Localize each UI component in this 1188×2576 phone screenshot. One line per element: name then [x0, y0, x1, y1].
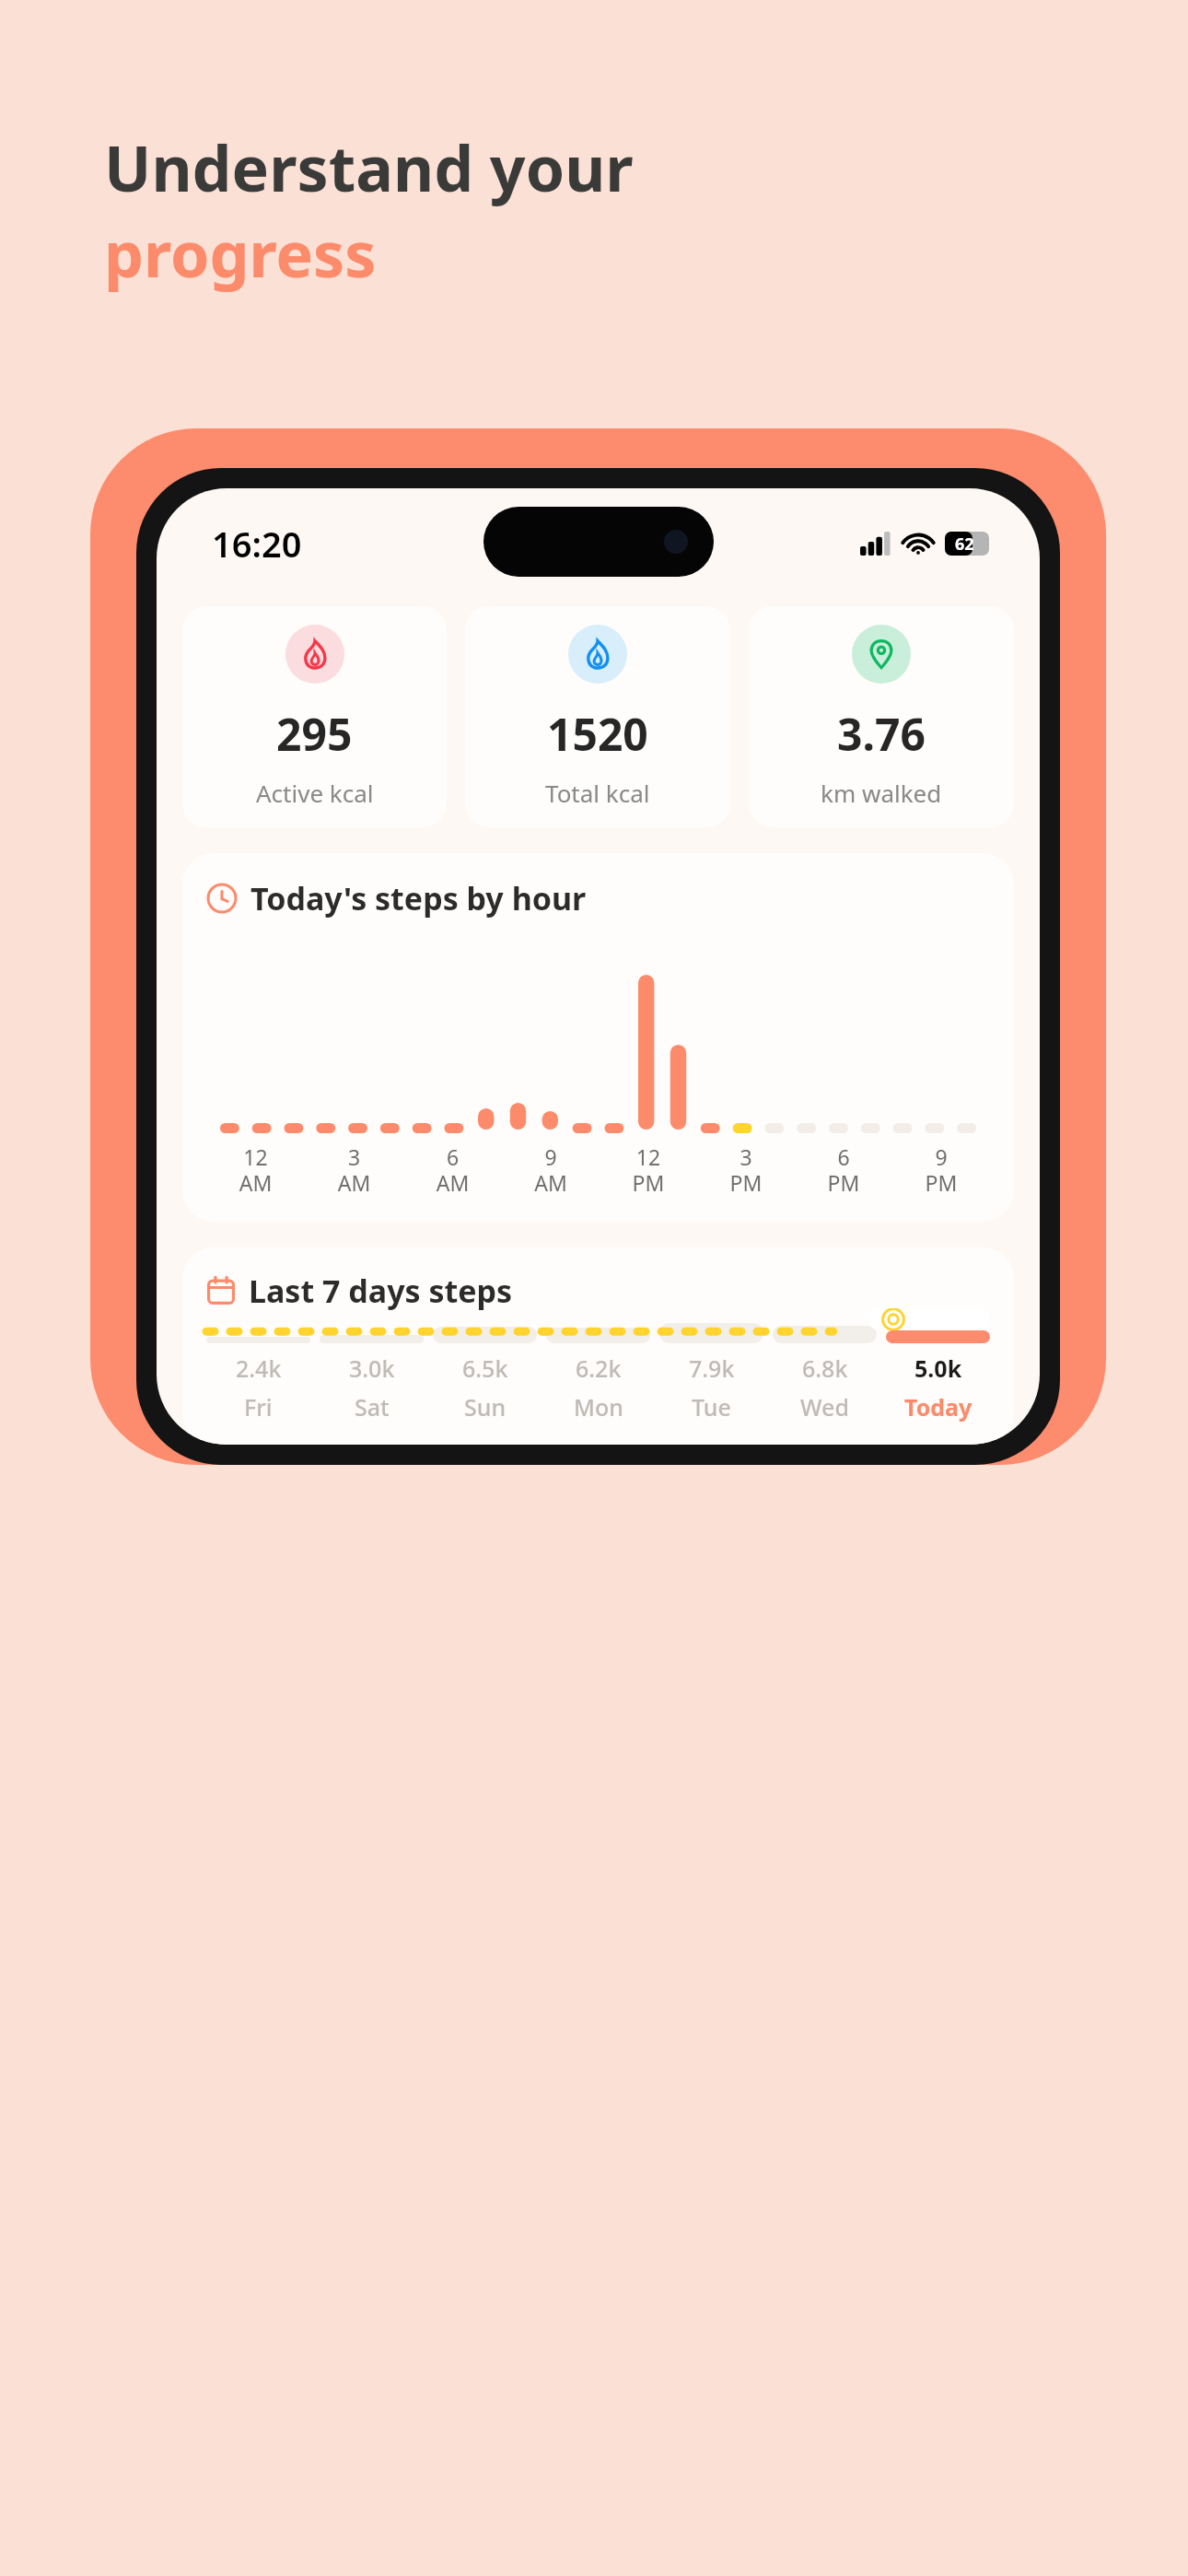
staticText: 3 PM [697, 1142, 795, 1198]
staticText: 5.0k [914, 1352, 962, 1384]
button[interactable]: Last 7 days steps [182, 1247, 1014, 1445]
button[interactable]: 3.76 [749, 606, 1014, 827]
staticText: Last 7 days steps [249, 1270, 513, 1312]
staticText: 12 AM [206, 1142, 305, 1198]
button[interactable]: 5.000 [868, 1308, 990, 1330]
staticText: 6 PM [795, 1142, 892, 1198]
staticText: 1520 [547, 704, 648, 764]
staticText: Today's steps by hour [250, 877, 587, 919]
staticText: Active kcal [256, 777, 374, 809]
staticText: 3 AM [305, 1142, 403, 1198]
staticText: Fri [244, 1391, 273, 1423]
staticText: 2.4k [236, 1352, 282, 1384]
button[interactable]: 295 [182, 606, 447, 827]
staticText: progress [104, 210, 377, 296]
staticText: 9 PM [892, 1142, 990, 1198]
staticText: Wed [800, 1391, 849, 1423]
staticText: 12 PM [600, 1142, 697, 1198]
staticText: km walked [821, 777, 942, 809]
staticText: 6 AM [403, 1142, 502, 1198]
staticText: Mon [574, 1391, 623, 1423]
staticText: Tue [692, 1391, 731, 1423]
staticText: 62 [955, 533, 974, 556]
staticText: Today [904, 1391, 973, 1423]
staticText: 295 [276, 704, 353, 764]
staticText: 6.5k [462, 1352, 508, 1384]
staticText: 9 AM [502, 1142, 600, 1198]
staticText: 3.0k [349, 1352, 395, 1384]
staticText: 7.9k [689, 1352, 735, 1384]
staticText: Understand your [104, 124, 634, 210]
staticText: Sat [355, 1391, 390, 1423]
button[interactable]: 1520 [465, 606, 730, 827]
staticText: Sun [464, 1391, 507, 1423]
staticText: 6.8k [802, 1352, 848, 1384]
staticText: 16:20 [212, 520, 302, 568]
staticText: 6.2k [576, 1352, 622, 1384]
button[interactable]: Today's steps by hour [182, 853, 1014, 1222]
staticText: 3.76 [837, 704, 926, 764]
staticText: Total kcal [545, 777, 650, 809]
